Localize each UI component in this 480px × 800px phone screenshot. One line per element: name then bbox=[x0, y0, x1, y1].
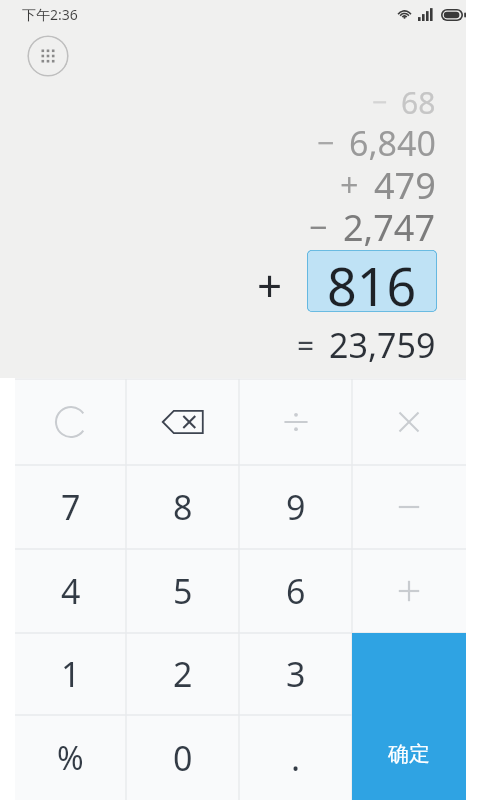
staticText: 1 bbox=[61, 651, 81, 697]
staticText: 确定 bbox=[388, 741, 430, 767]
staticText: 68 bbox=[401, 82, 436, 120]
staticText: 7 bbox=[61, 484, 81, 530]
button[interactable]: 5 bbox=[126, 549, 239, 633]
staticText: + bbox=[257, 255, 283, 311]
staticText: 3 bbox=[286, 651, 306, 697]
button[interactable]: 3 bbox=[239, 633, 352, 715]
staticText: + bbox=[340, 162, 359, 206]
staticText: − bbox=[372, 83, 388, 120]
button[interactable]: 确定 bbox=[352, 633, 466, 800]
button[interactable]: Plus bbox=[352, 549, 466, 633]
staticText: 816 bbox=[327, 250, 417, 312]
staticText: − bbox=[317, 121, 335, 163]
button[interactable]: 816 bbox=[307, 250, 437, 312]
staticText: 23,759 bbox=[329, 322, 436, 368]
staticText: . bbox=[291, 735, 301, 781]
staticText: − bbox=[309, 204, 328, 248]
staticText: 5 bbox=[173, 568, 193, 614]
button[interactable]: 0 bbox=[126, 715, 239, 800]
button[interactable]: % bbox=[15, 715, 126, 800]
button[interactable]: 4 bbox=[15, 549, 126, 633]
staticText: 下午2:36 bbox=[22, 5, 78, 24]
staticText: 2,747 bbox=[343, 203, 436, 248]
staticText: 8 bbox=[173, 484, 193, 530]
staticText: 6 bbox=[286, 568, 306, 614]
staticText: 0 bbox=[173, 735, 193, 781]
staticText: 4 bbox=[61, 568, 81, 614]
staticText: % bbox=[57, 736, 84, 780]
button[interactable]: Multiply bbox=[352, 379, 466, 465]
button[interactable]: Apps bbox=[27, 35, 69, 77]
button[interactable]: . bbox=[239, 715, 352, 800]
staticText: = bbox=[297, 325, 315, 366]
button[interactable]: Minus bbox=[352, 465, 466, 549]
staticText: 479 bbox=[374, 161, 436, 206]
button[interactable]: 6 bbox=[239, 549, 352, 633]
staticText: 6,840 bbox=[349, 120, 436, 163]
button[interactable]: 8 bbox=[126, 465, 239, 549]
button[interactable]: 2 bbox=[126, 633, 239, 715]
staticText: 2 bbox=[173, 651, 193, 697]
button[interactable]: 7 bbox=[15, 465, 126, 549]
button[interactable]: 1 bbox=[15, 633, 126, 715]
staticText: 9 bbox=[286, 484, 306, 530]
button[interactable]: Divide bbox=[239, 379, 352, 465]
button[interactable]: 9 bbox=[239, 465, 352, 549]
button[interactable]: Clear bbox=[15, 379, 126, 465]
button[interactable]: Backspace bbox=[126, 379, 239, 465]
